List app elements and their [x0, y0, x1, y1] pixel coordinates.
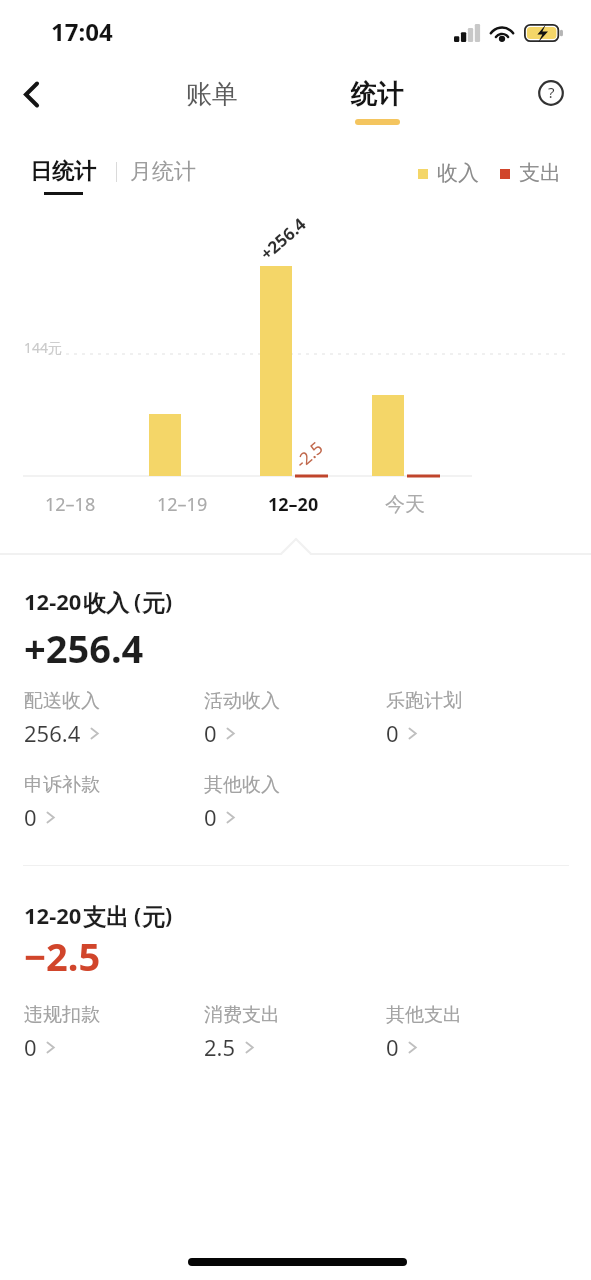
staticText: 乐跑计划 — [386, 689, 462, 713]
button[interactable]: 申诉补款 — [24, 773, 174, 832]
staticText: 144元 — [24, 338, 63, 357]
staticText: 12-20 — [24, 900, 82, 930]
staticText: 月统计 — [130, 158, 196, 186]
staticText: 收入 — [437, 160, 479, 186]
staticText: 今天 — [385, 492, 425, 517]
staticText: 申诉补款 — [24, 773, 100, 797]
staticText: ( — [134, 587, 142, 616]
staticText: ? — [548, 82, 555, 102]
staticText: 支出 — [83, 903, 129, 932]
staticText: +256.4 — [255, 212, 311, 265]
button[interactable]: 账单 — [172, 70, 252, 118]
staticText: 其他收入 — [204, 773, 280, 797]
staticText: ) — [165, 901, 173, 930]
staticText: 活动收入 — [204, 689, 280, 713]
staticText: 0 — [24, 802, 37, 832]
button[interactable]: 消费支出 — [204, 1003, 354, 1062]
staticText: -2.5 — [290, 436, 328, 473]
staticText: 统计 — [351, 78, 403, 111]
staticText: +256.4 — [24, 622, 144, 674]
staticText: 12–20 — [268, 492, 319, 517]
staticText: 支出 — [519, 160, 561, 186]
button[interactable]: 其他支出 — [386, 1003, 536, 1062]
staticText: 元 — [142, 903, 165, 932]
staticText: 256.4 — [24, 718, 81, 748]
staticText: 元 — [142, 589, 165, 618]
staticText: 账单 — [186, 78, 238, 111]
staticText: 12-20 — [24, 586, 82, 616]
staticText: ( — [134, 901, 142, 930]
button[interactable]: 月统计 — [130, 158, 196, 186]
staticText: 12–19 — [157, 492, 208, 517]
button[interactable]: 统计 — [337, 70, 417, 118]
button[interactable]: 其他收入 — [204, 773, 354, 832]
button[interactable]: 日统计 — [30, 158, 96, 186]
button[interactable]: Back — [7, 70, 55, 118]
staticText: 其他支出 — [386, 1003, 462, 1027]
staticText: 配送收入 — [24, 689, 100, 713]
staticText: 0 — [386, 1032, 399, 1062]
button[interactable]: 违规扣款 — [24, 1003, 174, 1062]
staticText: 17:04 — [51, 15, 113, 48]
staticText: ) — [165, 587, 173, 616]
button[interactable]: Help — [528, 70, 574, 116]
staticText: 12–18 — [45, 492, 96, 517]
staticText: −2.5 — [24, 930, 101, 982]
staticText: 2.5 — [204, 1032, 236, 1062]
staticText: 消费支出 — [204, 1003, 280, 1027]
staticText: 0 — [204, 718, 217, 748]
staticText: 0 — [24, 1032, 37, 1062]
staticText: 收入 — [83, 589, 129, 618]
button[interactable]: 活动收入 — [204, 689, 354, 748]
staticText: 0 — [204, 802, 217, 832]
button[interactable]: 配送收入 — [24, 689, 174, 748]
button[interactable]: 乐跑计划 — [386, 689, 536, 748]
staticText: 0 — [386, 718, 399, 748]
staticText: 日统计 — [30, 158, 96, 186]
staticText: 违规扣款 — [24, 1003, 100, 1027]
